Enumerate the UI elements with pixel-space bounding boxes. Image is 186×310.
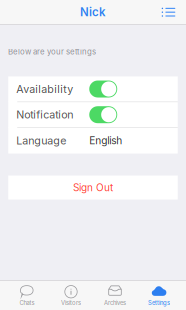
button[interactable]: Chats: [5, 281, 49, 310]
button[interactable]: Sign Out: [8, 175, 178, 199]
staticText: English: [89, 135, 122, 147]
button[interactable]: Availability: [8, 76, 178, 102]
staticText: Language: [16, 134, 66, 147]
staticText: Availability: [16, 83, 73, 95]
staticText: Settings: [148, 299, 170, 306]
staticText: Chats: [19, 299, 34, 306]
staticText: Below are your settings: [8, 47, 96, 56]
staticText: Archives: [104, 299, 126, 306]
staticText: Visitors: [61, 299, 81, 306]
staticText: Notification: [16, 108, 73, 121]
button[interactable]: Visitors: [49, 281, 93, 310]
staticText: Nick: [80, 5, 106, 19]
button[interactable]: Settings: [137, 281, 181, 310]
staticText: Sign Out: [73, 181, 113, 194]
button[interactable]: Language: [8, 128, 178, 153]
button[interactable]: Notification: [8, 102, 178, 128]
button[interactable]: Archives: [93, 281, 137, 310]
button[interactable]: Menu: [154, 0, 186, 24]
